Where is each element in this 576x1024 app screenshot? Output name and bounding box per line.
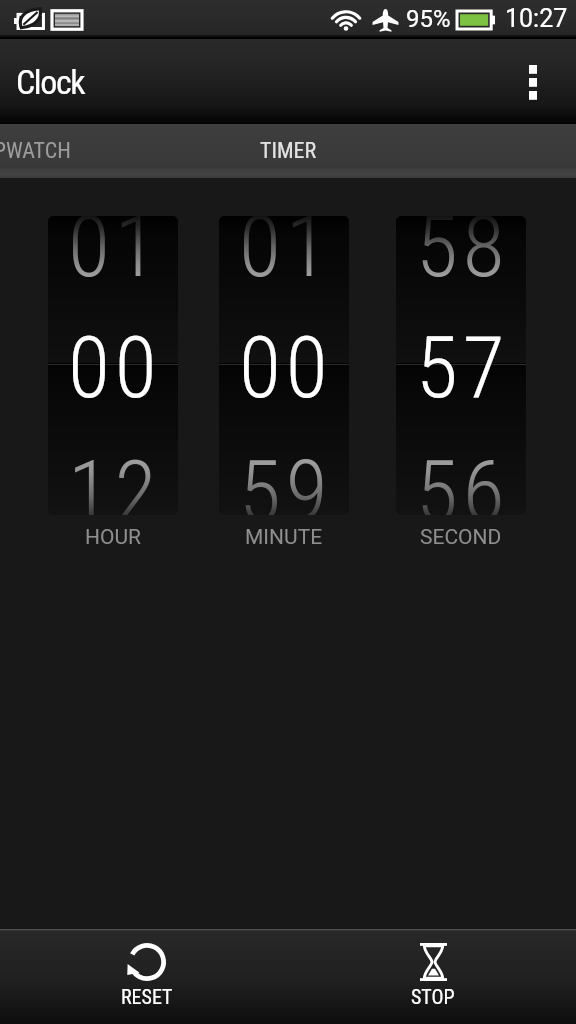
- button[interactable]: STOPWATCH: [0, 124, 185, 178]
- staticText: 95%: [406, 5, 451, 33]
- staticText: 00: [68, 317, 162, 418]
- staticText: 10:27: [505, 4, 568, 33]
- staticText: 01: [239, 216, 333, 297]
- staticText: 56: [416, 441, 510, 515]
- staticText: Clock: [16, 62, 85, 102]
- staticText: STOP: [411, 985, 455, 1008]
- staticText: 59: [239, 441, 333, 515]
- button[interactable]: 01: [219, 216, 349, 515]
- staticText: STOPWATCH: [0, 138, 71, 164]
- staticText: TIMER: [260, 138, 317, 164]
- button[interactable]: More options: [490, 39, 576, 124]
- staticText: 58: [416, 216, 510, 297]
- staticText: 00: [239, 317, 333, 418]
- staticText: 57: [416, 317, 510, 418]
- button[interactable]: STOP: [361, 929, 505, 1024]
- button[interactable]: 01: [48, 216, 178, 515]
- staticText: 01: [68, 216, 162, 297]
- staticText: RESET: [121, 985, 173, 1008]
- staticText: HOUR: [85, 525, 141, 550]
- staticText: SECOND: [420, 525, 502, 550]
- button[interactable]: 58: [396, 216, 526, 515]
- staticText: 12: [68, 441, 162, 515]
- button[interactable]: TIMER: [195, 124, 381, 178]
- button[interactable]: RESET: [75, 929, 219, 1024]
- staticText: MINUTE: [245, 525, 323, 550]
